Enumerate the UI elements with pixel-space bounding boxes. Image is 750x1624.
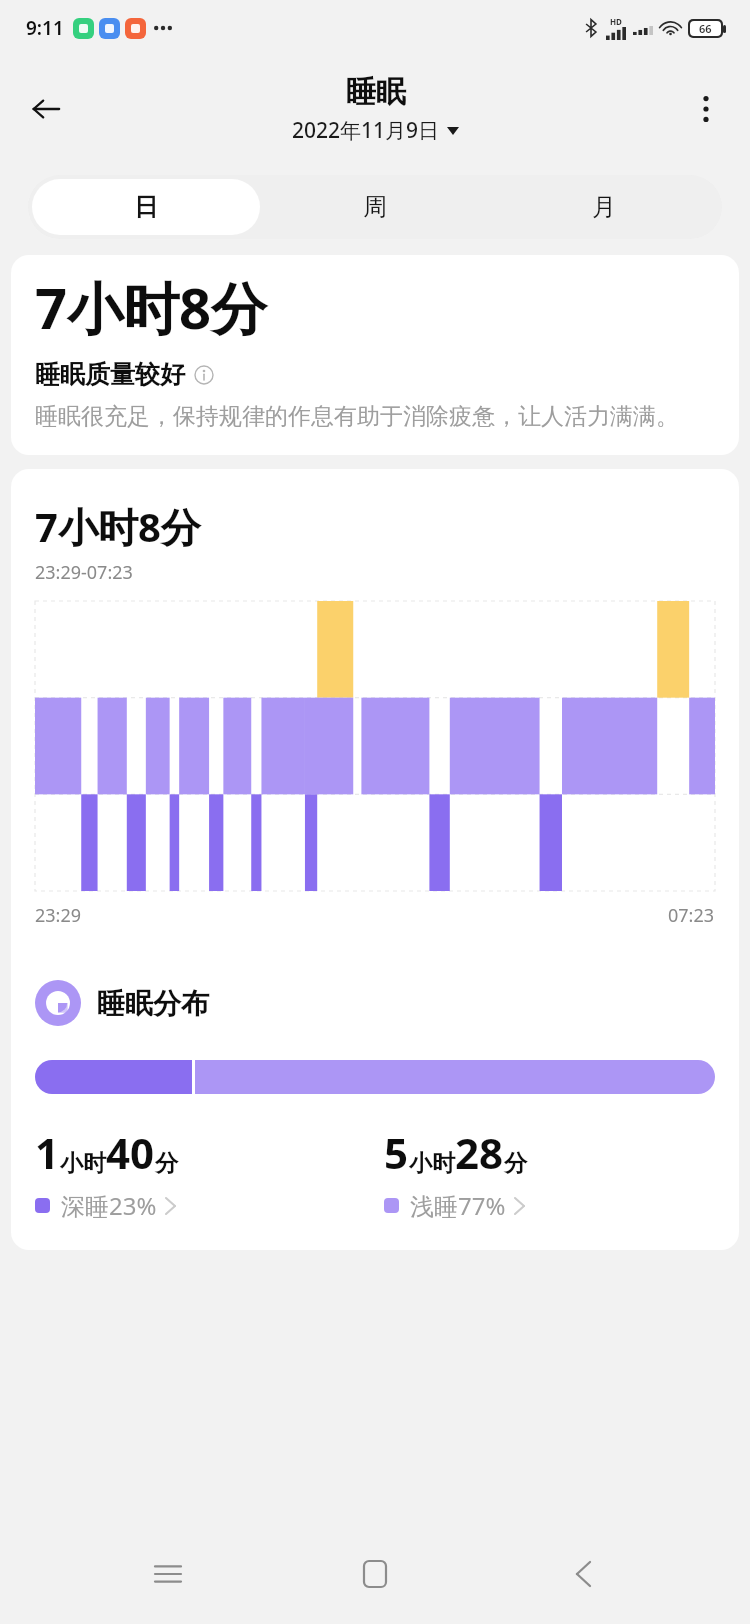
staticText: 睡眠分布 (97, 986, 209, 1021)
staticText: 小时 (409, 1149, 455, 1178)
button[interactable]: More options (680, 83, 732, 135)
button[interactable]: 2022年11月9日 (292, 116, 459, 145)
staticText: 月 (592, 192, 616, 222)
button[interactable]: Recent apps (128, 1534, 208, 1614)
staticText: 分 (504, 1149, 527, 1178)
staticText: 7小时8分 (35, 269, 268, 345)
staticText: 分 (155, 1149, 178, 1178)
button[interactable]: 周 (260, 179, 489, 235)
staticText: 23:29-07:23 (35, 560, 133, 585)
staticText: 浅睡77% (410, 1189, 506, 1222)
staticText: 1 (35, 1124, 60, 1181)
button[interactable]: Home (335, 1534, 415, 1614)
staticText: 睡眠 (346, 73, 406, 111)
button[interactable]: 5 (384, 1124, 715, 1222)
staticText: 周 (363, 192, 387, 222)
button[interactable]: 月 (489, 179, 718, 235)
staticText: 睡眠很充足，保持规律的作息有助于消除疲惫，让人活力满满。 (35, 402, 679, 431)
button[interactable]: 1 (35, 1124, 366, 1222)
button[interactable]: Back (18, 81, 74, 137)
staticText: 40 (106, 1124, 155, 1181)
staticText: 5 (384, 1124, 409, 1181)
staticText: 深睡23% (61, 1189, 157, 1222)
button[interactable]: 日 (32, 179, 260, 235)
staticText: 28 (455, 1124, 504, 1181)
staticText: HD (610, 16, 622, 27)
staticText: 日 (134, 192, 158, 222)
staticText: 66 (699, 21, 712, 36)
staticText: 9:11 (26, 15, 64, 41)
button[interactable]: Back (543, 1534, 623, 1614)
staticText: 2022年11月9日 (292, 116, 440, 145)
staticText: 7小时8分 (35, 499, 201, 554)
staticText: 07:23 (668, 903, 715, 928)
staticText: 睡眠质量较好 (35, 359, 185, 390)
button[interactable]: 睡眠分布 (35, 980, 209, 1026)
button[interactable]: 7小时8分 (11, 255, 739, 455)
staticText: 23:29 (35, 903, 82, 928)
staticText: 小时 (60, 1149, 106, 1178)
